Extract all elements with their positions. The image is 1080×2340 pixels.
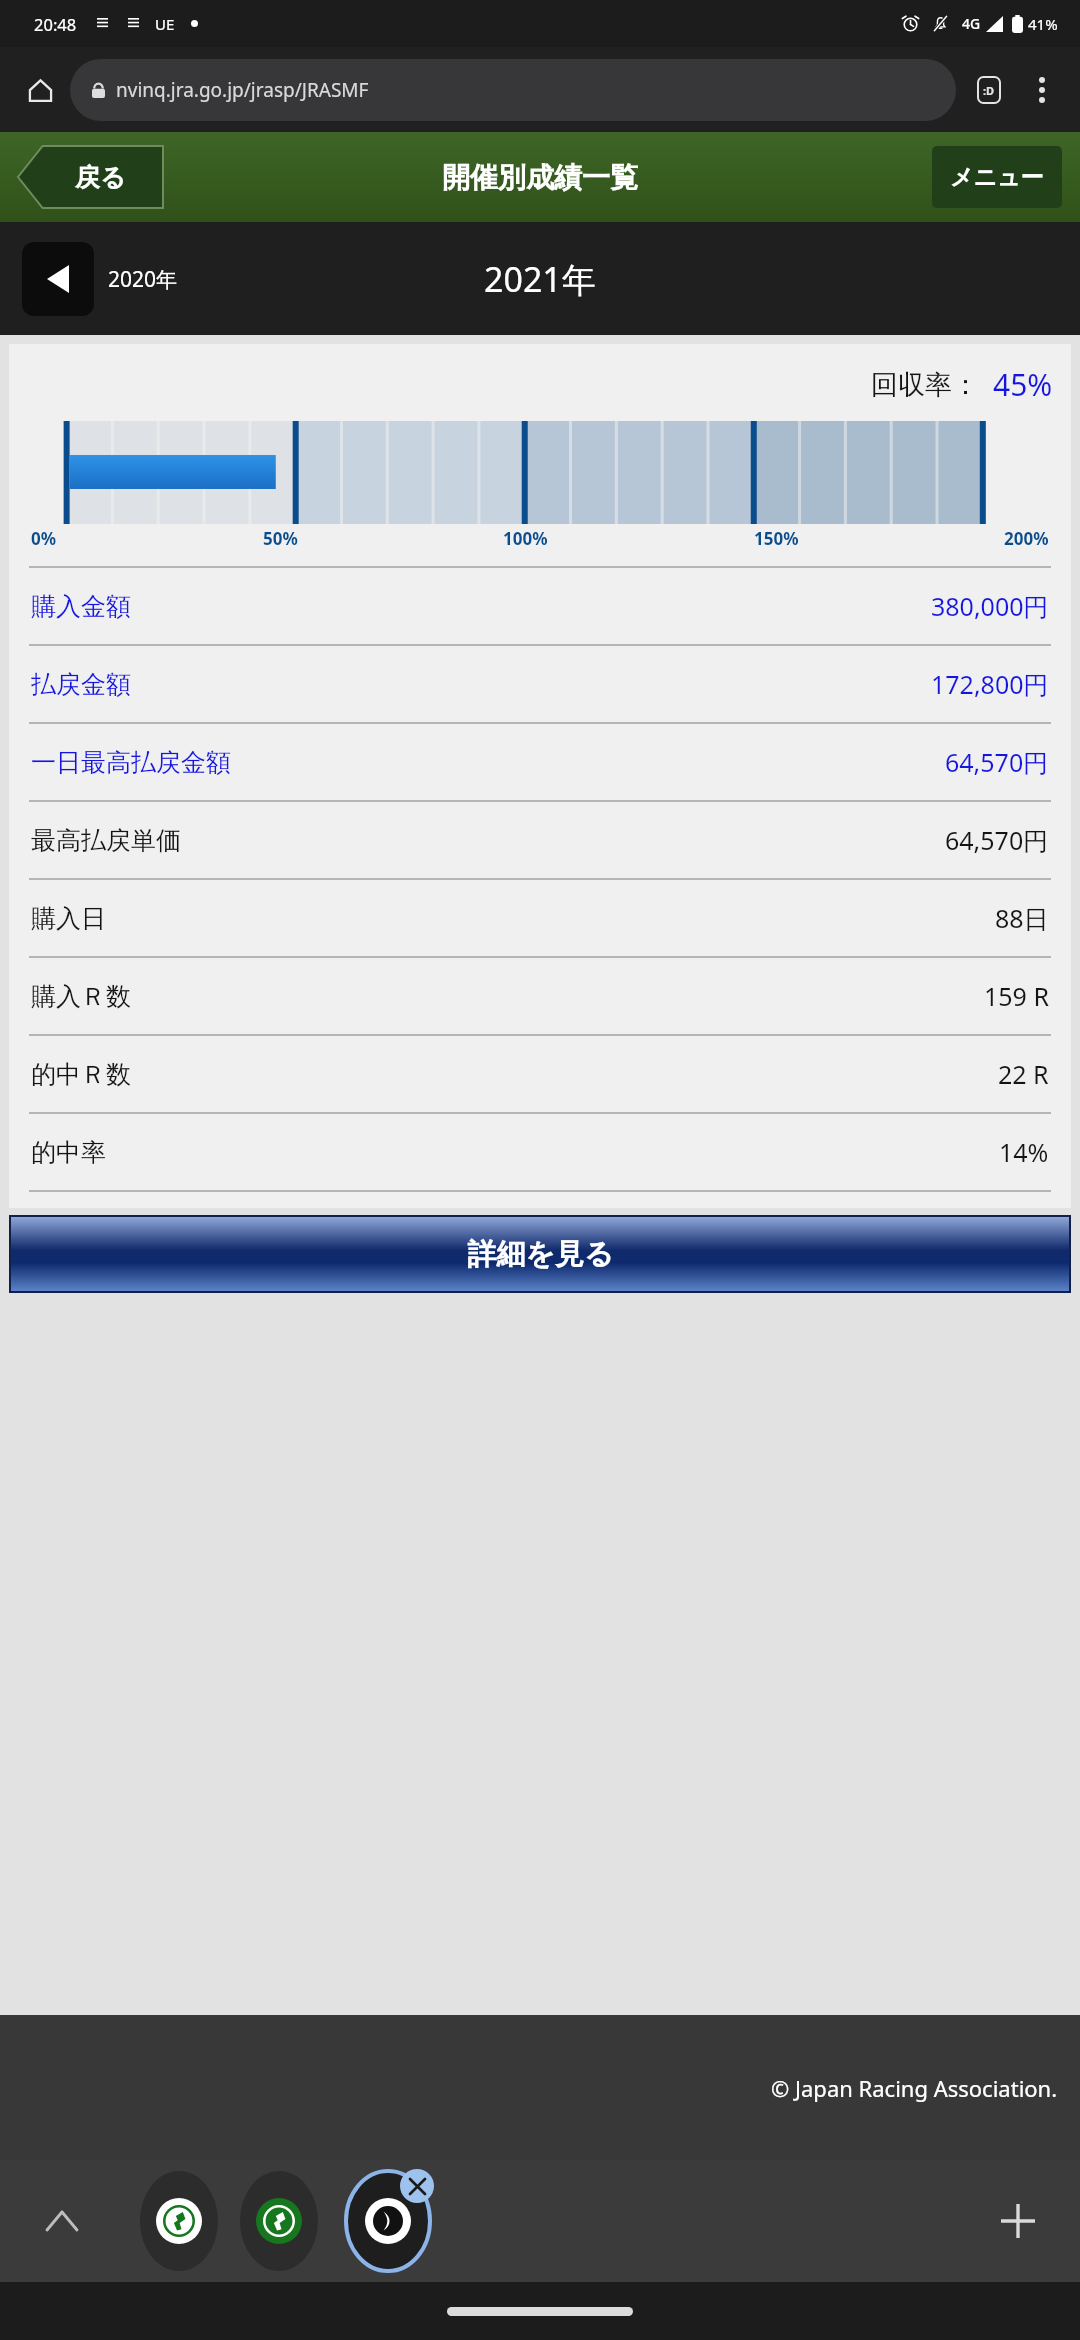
staticText: 200%	[1004, 527, 1049, 550]
staticText: 購入金額	[31, 591, 131, 622]
staticText: 詳細を見る	[467, 1236, 614, 1273]
button[interactable]: 詳細を見る	[11, 1217, 1069, 1291]
button[interactable]: 払戻金額	[9, 646, 1071, 722]
button[interactable]: Tabs	[966, 67, 1012, 113]
button[interactable]: Current tab, close	[340, 2167, 436, 2275]
button[interactable]: Expand	[24, 2183, 100, 2259]
staticText: 50%	[263, 527, 298, 550]
staticText: 回収率：	[871, 368, 979, 402]
button[interactable]: 2020年	[22, 242, 178, 316]
staticText: 的中Ｒ数	[31, 1059, 131, 1090]
staticText: :D	[983, 83, 995, 98]
button[interactable]: nvinq.jra.go.jp/jrasp/JRASMF	[70, 59, 956, 121]
button[interactable]: Tab 1	[140, 2171, 218, 2271]
staticText: 最高払戻単価	[31, 825, 181, 856]
staticText: メニュー	[950, 163, 1044, 192]
button[interactable]: 戻る	[18, 146, 163, 208]
staticText: UE	[155, 14, 175, 34]
staticText: 払戻金額	[31, 669, 131, 700]
staticText: 2020年	[108, 265, 178, 294]
staticText: 戻る	[75, 162, 126, 193]
staticText: © Japan Racing Association.	[771, 2073, 1058, 2103]
staticText: nvinq.jra.go.jp/jrasp/JRASMF	[116, 77, 369, 103]
button[interactable]: More options	[1020, 68, 1064, 112]
staticText: 22 R	[998, 1057, 1049, 1091]
staticText: 開催別成績一覧	[442, 160, 638, 195]
button[interactable]: 一日最高払戻金額	[9, 724, 1071, 800]
staticText: 64,570円	[945, 823, 1049, 857]
button[interactable]: メニュー	[932, 146, 1062, 208]
button[interactable]: 購入金額	[9, 568, 1071, 644]
staticText: 一日最高払戻金額	[31, 747, 231, 778]
staticText: 購入Ｒ数	[31, 981, 131, 1012]
staticText: 購入日	[31, 903, 106, 934]
staticText: 380,000円	[931, 589, 1049, 623]
staticText: 88日	[995, 901, 1049, 935]
staticText: 20:48	[34, 13, 77, 35]
button[interactable]: New tab	[980, 2183, 1056, 2259]
staticText: 150%	[754, 527, 799, 550]
staticText: 172,800円	[931, 667, 1049, 701]
staticText: 4G	[962, 14, 981, 33]
staticText: 0%	[31, 527, 57, 550]
staticText: 64,570円	[945, 745, 1049, 779]
staticText: 159 R	[984, 979, 1049, 1013]
staticText: 100%	[503, 527, 548, 550]
staticText: 41%	[1028, 14, 1058, 34]
button[interactable]: Home	[16, 66, 64, 114]
staticText: 2021年	[484, 256, 596, 302]
staticText: 的中率	[31, 1137, 106, 1168]
button[interactable]: Tab 2	[240, 2171, 318, 2271]
staticText: 14%	[999, 1135, 1049, 1169]
staticText: 45%	[993, 364, 1053, 405]
